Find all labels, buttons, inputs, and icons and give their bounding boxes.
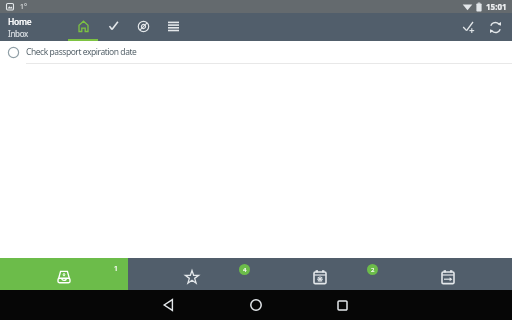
button[interactable]: 4 <box>128 258 256 290</box>
button[interactable] <box>384 258 512 290</box>
button[interactable]: 1 <box>0 258 128 290</box>
button[interactable] <box>98 13 128 41</box>
staticText: 2 <box>371 266 375 274</box>
staticText: 15:01 <box>486 1 507 12</box>
button[interactable] <box>458 16 480 38</box>
button[interactable] <box>247 296 265 314</box>
staticText: 1 <box>114 264 119 274</box>
staticText: Inbox <box>8 28 28 39</box>
staticText: 1° <box>20 2 27 12</box>
button[interactable] <box>158 13 188 41</box>
button[interactable]: 2 <box>256 258 384 290</box>
button[interactable]: Check passport expiration date <box>0 41 512 63</box>
staticText: 4 <box>243 266 247 274</box>
button[interactable] <box>484 16 506 38</box>
button[interactable] <box>333 296 351 314</box>
button[interactable] <box>68 13 98 41</box>
button[interactable] <box>160 296 178 314</box>
button[interactable] <box>128 13 158 41</box>
staticText: Home <box>8 16 32 28</box>
staticText: Check passport expiration date <box>26 46 137 58</box>
